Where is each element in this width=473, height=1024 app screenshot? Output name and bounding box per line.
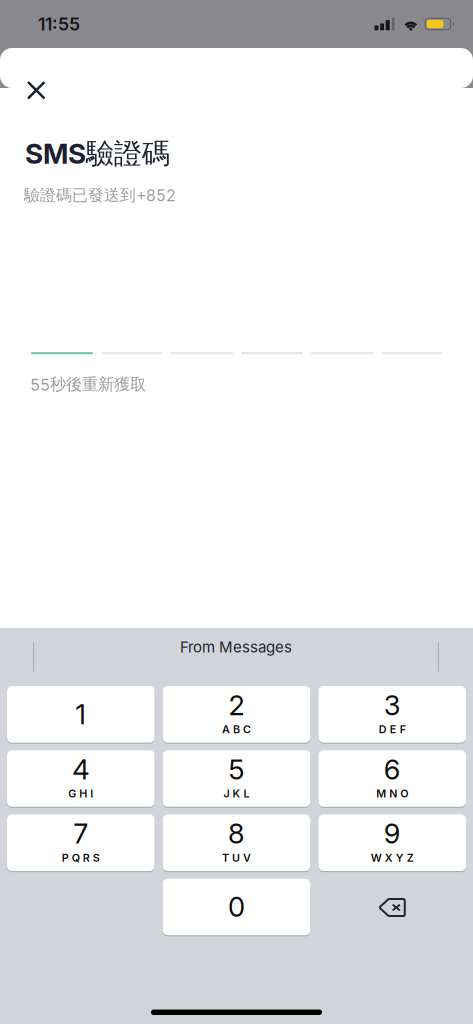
button[interactable]: Close [16,70,58,110]
staticText: 6 [384,753,401,786]
staticText: P Q R S [62,851,100,864]
staticText: M N O [376,787,408,800]
staticText: 55秒後重新獲取 [30,374,146,395]
button[interactable]: Delete [318,879,466,936]
button[interactable]: 2 [163,686,310,744]
staticText: 驗證碼已發送到+852 [24,185,176,205]
button[interactable]: 7 [7,814,154,872]
staticText: From Messages [180,638,292,656]
button[interactable]: 4 [7,750,154,808]
button[interactable]: 1 [7,686,154,744]
staticText: G H I [68,787,93,800]
staticText: D E F [379,723,406,736]
button[interactable]: 3 [318,686,466,744]
staticText: 3 [384,689,401,722]
button[interactable]: 5 [163,750,310,808]
staticText: A B C [222,723,251,736]
staticText: 5 [228,753,244,786]
staticText: 0 [228,890,245,923]
staticText: SMS [25,137,86,170]
staticText: W X Y Z [371,851,414,864]
staticText: 7 [73,817,88,850]
staticText: 9 [384,817,401,850]
staticText: J K L [223,787,249,800]
staticText: 1 [75,698,86,731]
staticText: 11:55 [38,13,80,35]
button[interactable]: 6 [318,750,466,808]
button[interactable]: 8 [163,814,310,872]
button[interactable]: 9 [318,814,466,872]
staticText: 驗證碼 [86,136,170,171]
staticText: T U V [222,851,251,864]
button[interactable]: 0 [163,879,310,936]
staticText: 4 [72,753,89,786]
staticText: 2 [228,689,244,722]
staticText: 8 [228,817,245,850]
